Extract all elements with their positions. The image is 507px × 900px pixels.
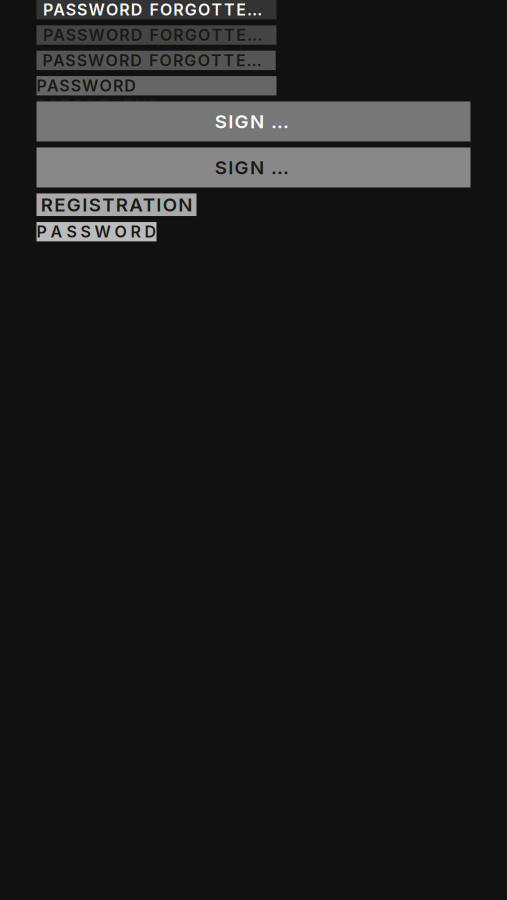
staticText: PASSWORD FORGOTTEN? xyxy=(43,0,270,19)
staticText: REGISTRATION xyxy=(41,193,192,216)
staticText: SIGN IN xyxy=(215,110,292,133)
staticText: PASSWORD FORGOTTEN? xyxy=(36,76,264,95)
staticText: SIGN IN xyxy=(215,156,292,179)
staticText: PASSWORD FORGOTTEN? xyxy=(43,25,270,45)
staticText: PASSWORD FORGOTTEN? xyxy=(42,51,270,70)
staticText: P A S S W O R D xyxy=(36,222,156,241)
